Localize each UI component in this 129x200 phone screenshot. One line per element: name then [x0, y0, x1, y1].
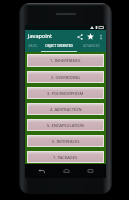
staticText: 5. ENCAPSULATION	[47, 123, 84, 128]
button[interactable]: 2. OVERRIDING	[28, 72, 103, 82]
button[interactable]: Favorite	[85, 31, 95, 42]
staticText: ADVANCED	[83, 44, 100, 48]
button[interactable]: 3. POLYMORPHISM	[28, 88, 103, 98]
staticText: 7. PACKAGES	[53, 155, 78, 160]
button[interactable]: 6. INTERFACES	[28, 136, 103, 146]
staticText: Javapoint	[28, 32, 52, 39]
staticText: 2. OVERRIDING	[51, 75, 81, 80]
button[interactable]: Recents	[81, 164, 99, 178]
button[interactable]: Home	[57, 164, 75, 178]
staticText: 1. INHERITANCE	[50, 58, 81, 63]
button[interactable]: 5. ENCAPSULATION	[28, 120, 103, 130]
staticText: 6. INTERFACES	[52, 139, 80, 144]
button[interactable]: ADVANCED	[77, 41, 106, 52]
button[interactable]: More options	[95, 31, 106, 42]
staticText: BASIC	[28, 44, 38, 48]
staticText: 3. POLYMORPHISM	[47, 91, 84, 96]
button[interactable]: Share	[75, 31, 85, 42]
button[interactable]: BASIC	[25, 41, 41, 52]
button[interactable]: Back	[32, 164, 50, 178]
button[interactable]: OBJECT ORIENTED	[41, 41, 77, 52]
button[interactable]: 1. INHERITANCE	[28, 55, 103, 66]
button[interactable]: 7. PACKAGES	[28, 152, 103, 162]
button[interactable]: 4. ABSTRACTION	[28, 104, 103, 114]
staticText: OBJECT ORIENTED	[45, 44, 73, 48]
staticText: 4. ABSTRACTION	[50, 107, 82, 112]
